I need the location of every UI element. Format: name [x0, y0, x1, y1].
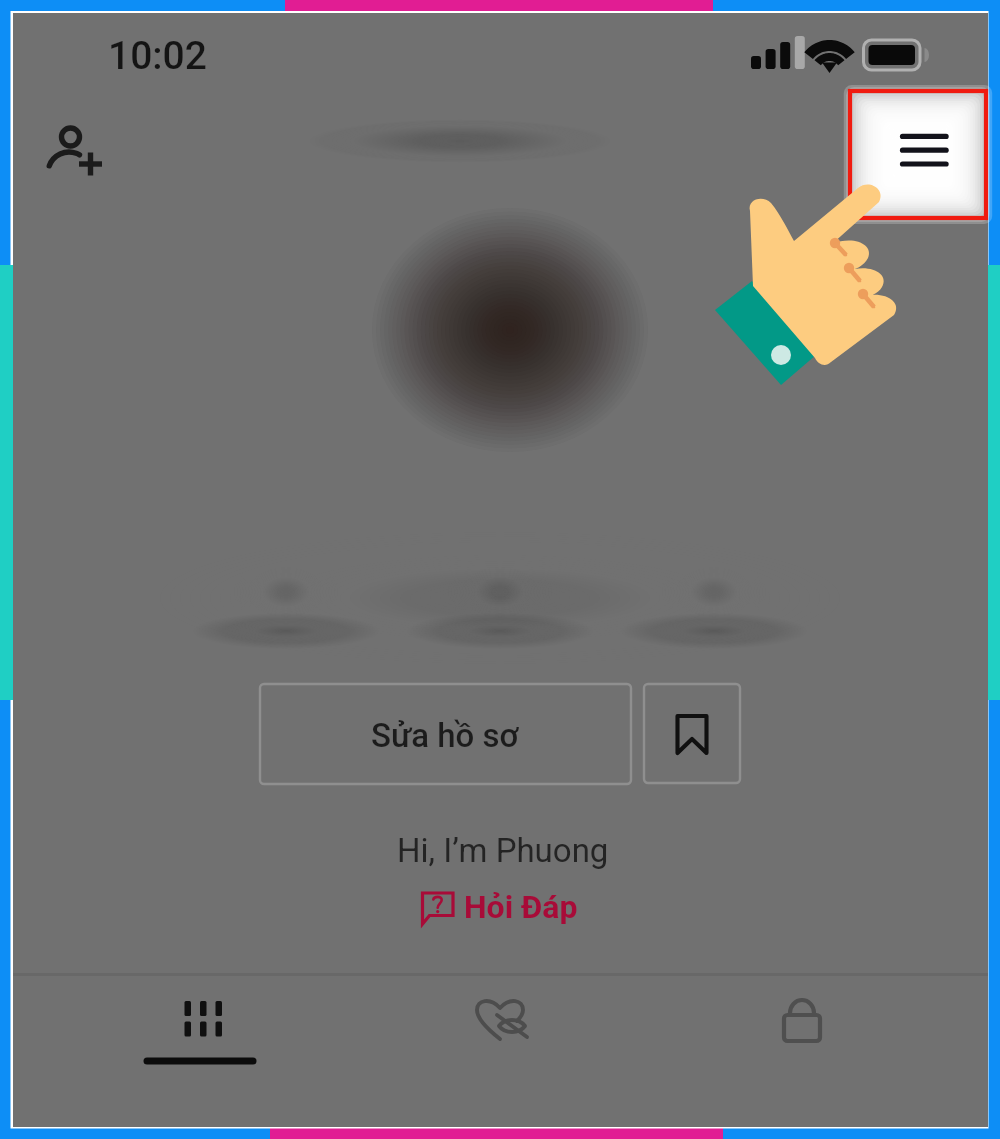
button[interactable]: Videos — [145, 985, 255, 1070]
staticText: Hỏi Đáp — [464, 888, 578, 926]
button[interactable]: Saved — [643, 684, 740, 783]
button[interactable]: Menu — [850, 91, 986, 218]
staticText: 10:02 — [108, 33, 207, 79]
staticText: Sửa hồ sơ — [371, 716, 519, 755]
button[interactable]: Liked videos — [445, 985, 555, 1070]
button[interactable] — [415, 880, 592, 930]
button[interactable]: Private videos — [745, 985, 855, 1070]
button[interactable] — [260, 684, 631, 784]
staticText: Hi, I’m Phuong — [397, 831, 609, 870]
button[interactable]: Add friend — [38, 108, 112, 190]
